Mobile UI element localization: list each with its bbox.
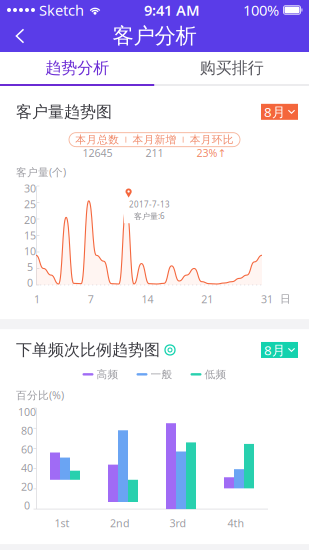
staticText: 12645 [82,146,112,160]
staticText: 211 [145,146,163,160]
staticText: 客户量:6 [134,211,165,221]
staticText: 2nd [110,516,130,530]
button[interactable]: 趋势分析 [0,52,154,84]
staticText: 23%↑ [196,146,226,160]
staticText: 高频 [96,368,118,381]
staticText: 31 [261,292,273,306]
staticText: 14 [141,292,153,306]
staticText: 百分比(%) [16,388,64,402]
staticText: 30 [24,181,36,195]
staticText: Sketch [39,0,84,20]
staticText: 下单频次比例趋势图 [16,340,160,360]
staticText: 日 [280,292,291,306]
staticText: 客户分析 [112,23,196,49]
staticText: 100% [243,0,279,20]
staticText: 4th [227,516,244,530]
staticText: 5 [27,260,33,274]
staticText: 21 [201,292,213,306]
staticText: 2017-7-13 [129,199,170,210]
staticText: 0 [24,498,30,512]
staticText: 购买排行 [200,58,264,78]
button[interactable]: 8月 [261,104,298,120]
staticText: 20 [24,213,36,227]
staticText: 本月新增 [132,133,176,146]
staticText: 趋势分析 [45,58,109,78]
staticText: 1 [34,292,40,306]
staticText: 1st [54,516,69,530]
staticText: 8月 [264,103,285,121]
staticText: 3rd [169,516,186,530]
staticText: 7 [88,292,94,306]
staticText: 25 [24,197,36,211]
staticText: 低频 [204,368,226,381]
staticText: 20 [21,479,33,494]
staticText: 本月环比 [190,133,234,146]
staticText: 9:41 AM [144,0,200,20]
button[interactable]: 购买排行 [154,52,309,84]
staticText: 15 [24,228,36,243]
staticText: 60 [21,442,33,456]
staticText: 40 [21,461,33,475]
button[interactable]: Back [0,20,39,51]
staticText: 一般 [150,368,172,381]
staticText: 客户量趋势图 [16,102,112,122]
button[interactable]: 8月 [261,342,298,358]
staticText: 10 [24,244,36,258]
staticText: 0 [27,275,33,290]
staticText: 80 [21,423,33,438]
staticText: 客户量(个) [16,165,66,179]
staticText: 100 [18,405,36,419]
staticText: 本月总数 [75,133,119,146]
staticText: 8月 [264,341,285,359]
